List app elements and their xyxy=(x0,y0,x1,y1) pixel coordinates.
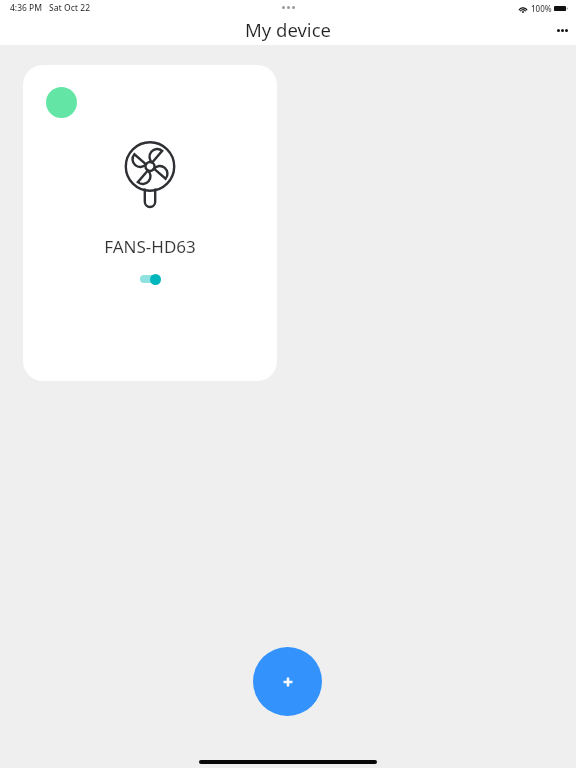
staticText: FANS-HD63 xyxy=(104,235,196,258)
button[interactable]: Add device xyxy=(253,647,322,716)
staticText: 4:36 PM xyxy=(10,2,43,14)
button[interactable]: FANS-HD63 xyxy=(23,65,277,381)
staticText: 100% xyxy=(531,3,552,14)
button[interactable]: More options xyxy=(541,16,575,45)
staticText: My device xyxy=(245,17,331,42)
staticText: Sat Oct 22 xyxy=(49,2,91,14)
button[interactable]: Power toggle xyxy=(136,271,164,287)
